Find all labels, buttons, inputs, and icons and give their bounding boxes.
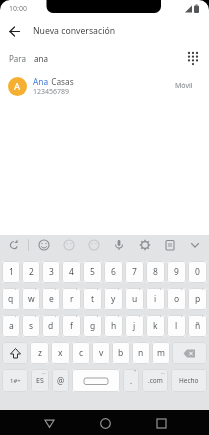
staticText: ` [181,288,183,294]
button[interactable]: 9 [167,261,186,283]
button[interactable] [150,412,172,434]
button[interactable]: ES [31,369,49,392]
staticText: 6 [111,266,116,278]
staticText: ana [34,53,48,64]
staticText: ñ [195,320,201,332]
staticText: k [153,320,158,332]
button[interactable]: q [2,288,20,310]
button[interactable]: n [132,342,150,364]
button[interactable]: 8 [146,261,165,283]
staticText: ` [35,288,37,294]
button[interactable] [83,235,105,255]
button[interactable]: d [42,315,60,337]
button[interactable]: a [2,315,20,337]
button[interactable] [184,235,206,255]
staticText: w [28,293,35,305]
button[interactable]: t [83,288,102,310]
button[interactable]: x [51,342,70,364]
button[interactable] [183,48,203,68]
staticText: f [70,320,73,332]
button[interactable]: c [72,342,90,364]
button[interactable]: e [42,288,60,310]
button[interactable]: 7 [125,261,144,283]
staticText: Móvil [175,81,193,91]
button[interactable]: k [146,315,165,337]
staticText: g [90,320,96,332]
button[interactable] [58,235,80,255]
button[interactable]: 1#+ [2,369,28,392]
button[interactable] [38,412,60,434]
button[interactable]: h [104,315,123,337]
staticText: e [49,293,54,305]
staticText: ` [97,288,99,294]
staticText: 1#+ [10,377,21,385]
staticText: ... [42,369,46,375]
staticText: ` [202,315,204,321]
button[interactable]: 1 [2,261,20,283]
button[interactable] [172,342,207,364]
button[interactable]: 2 [22,261,40,283]
staticText: c [79,347,84,359]
staticText: 10:00 [9,4,27,14]
button[interactable] [33,235,55,255]
staticText: ` [139,315,141,321]
staticText: 4 [69,266,74,278]
button[interactable]: 6 [104,261,123,283]
button[interactable]: Hecho [171,369,207,392]
staticText: 2 [29,266,34,278]
button[interactable]: f [62,315,81,337]
staticText: Nueva conversación [33,25,116,37]
button[interactable]: ñ [188,315,207,337]
button[interactable]: b [112,342,130,364]
button[interactable]: z [30,342,49,364]
staticText: b [118,347,124,359]
staticText: ` [55,315,57,321]
button[interactable]: 0 [188,261,207,283]
staticText: t [91,293,95,305]
button[interactable]: i [146,288,165,310]
staticText: 0 [195,266,200,278]
button[interactable]: .com [142,369,168,392]
staticText: u [132,293,138,305]
button[interactable] [0,17,28,45]
button[interactable] [134,235,156,255]
button[interactable]: 5 [83,261,102,283]
button[interactable] [108,235,130,255]
button[interactable]: p [188,288,207,310]
button[interactable] [159,235,181,255]
staticText: " [134,369,136,375]
button[interactable]: m [152,342,170,364]
button[interactable]: g [83,315,102,337]
button[interactable]: @ [52,369,69,392]
staticText: ` [55,288,57,294]
button[interactable] [2,342,28,364]
button[interactable]: u [125,288,144,310]
button[interactable]: w [22,288,40,310]
button[interactable]: r [62,288,81,310]
staticText: ... [161,369,165,375]
staticText: ` [35,315,37,321]
button[interactable] [72,369,120,392]
button[interactable]: . [123,369,139,392]
button[interactable] [3,235,25,255]
button[interactable]: y [104,288,123,310]
staticText: ` [76,315,78,321]
staticText: ` [118,315,120,321]
staticText: ` [181,315,183,321]
button[interactable]: o [167,288,186,310]
staticText: 8 [153,266,158,278]
staticText: x [58,347,63,359]
button[interactable] [94,412,116,434]
staticText: n [138,347,144,359]
staticText: v [99,347,104,359]
button[interactable]: 3 [42,261,60,283]
button[interactable]: v [92,342,110,364]
button[interactable]: s [22,315,40,337]
staticText: ` [202,288,204,294]
button[interactable]: j [125,315,144,337]
button[interactable]: l [167,315,186,337]
button[interactable]: 4 [62,261,81,283]
staticText: ` [139,288,141,294]
staticText: h [111,320,117,332]
button[interactable]: A [0,71,209,101]
